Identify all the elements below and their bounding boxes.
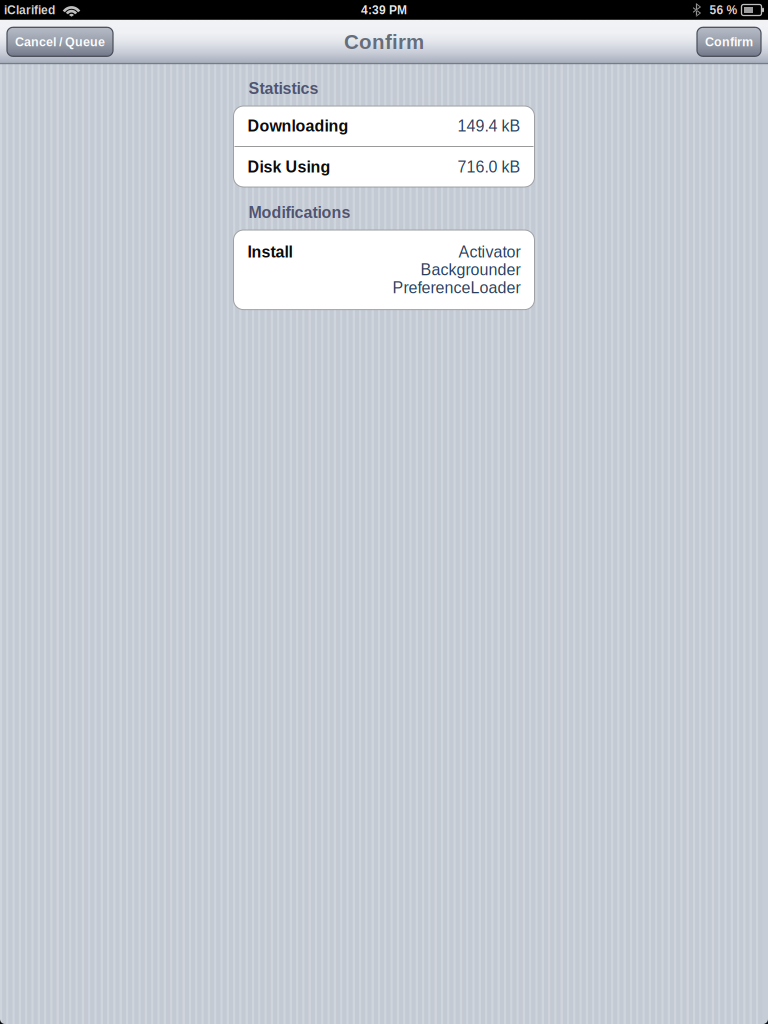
button[interactable]: Confirm: [697, 27, 761, 56]
staticText: Modifications: [248, 204, 350, 221]
button[interactable]: Disk Using: [233, 147, 534, 187]
staticText: 716.0 kB: [457, 158, 520, 176]
staticText: Install: [247, 243, 292, 261]
staticText: Confirm: [705, 35, 753, 49]
staticText: PreferenceLoader: [392, 279, 520, 297]
staticText: Statistics: [248, 80, 318, 97]
staticText: Confirm: [344, 30, 424, 53]
staticText: Downloading: [247, 117, 348, 135]
staticText: Cancel / Queue: [15, 35, 105, 49]
button[interactable]: Cancel / Queue: [7, 27, 113, 56]
staticText: 56 %: [709, 3, 737, 17]
staticText: Activator: [458, 243, 520, 261]
staticText: Backgrounder: [420, 261, 520, 279]
staticText: Disk Using: [247, 158, 330, 176]
staticText: 4:39 PM: [361, 3, 407, 17]
button[interactable]: Downloading: [233, 106, 534, 146]
staticText: 149.4 kB: [457, 117, 520, 135]
staticText: iClarified: [4, 3, 55, 17]
